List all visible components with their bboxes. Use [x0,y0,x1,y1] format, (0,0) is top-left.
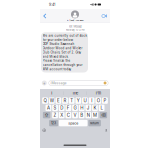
button[interactable]: N [85,112,91,118]
staticText: Q [44,98,47,103]
staticText: K [93,105,96,110]
button[interactable]: I [40,90,63,96]
button[interactable]: P [102,97,108,104]
staticText: V [73,112,76,118]
staticText: G [73,105,76,110]
staticText: ⌫ [101,113,106,117]
staticText: Z [53,112,56,118]
staticText: N [87,112,90,118]
staticText: space [68,121,78,125]
staticText: R [63,98,66,103]
staticText: +1 (555) 123-4567 [66,19,83,22]
button[interactable]: FaceTime [100,13,109,19]
button[interactable]: L [99,105,104,111]
staticText: W [50,98,54,103]
staticText: 123 [51,121,56,125]
staticText: D [60,105,63,110]
button[interactable]: Back [41,11,48,21]
staticText: Y [77,98,80,103]
staticText: iMessage [50,81,66,85]
button[interactable]: A [45,105,51,111]
staticText: E [57,98,60,103]
button[interactable]: X [59,112,65,118]
button[interactable]: T [69,97,75,104]
staticText: F [67,105,70,110]
button[interactable]: R [62,97,68,104]
button[interactable]: K [92,105,98,111]
button[interactable]: 123 [49,120,58,126]
staticText: + [43,80,46,86]
staticText: M [93,112,97,118]
staticText: The [72,91,78,96]
button[interactable]: F [65,105,71,111]
staticText: L [101,105,103,110]
button[interactable]: O [95,97,101,104]
button[interactable]: G [72,105,78,111]
button[interactable]: space [59,120,87,126]
staticText: O [97,98,100,103]
button[interactable]: D [59,105,65,111]
staticText: T [70,98,73,103]
button[interactable]: Add media [42,80,47,86]
button[interactable]: S [52,105,58,111]
staticText: Yesterday 10:12 PM [65,28,84,31]
button[interactable]: C [65,112,71,118]
button[interactable]: Switch keyboard [43,129,46,132]
button[interactable]: H [79,105,85,111]
button[interactable]: B [79,112,85,118]
staticText: S [54,105,57,110]
staticText: B [80,112,83,118]
staticText: 9:41 [49,2,55,7]
staticText: ⇧ [45,113,49,117]
staticText: X [60,112,63,118]
button[interactable]: U [82,97,88,104]
button[interactable]: Q [42,97,48,104]
button[interactable]: I [89,97,94,104]
staticText: C [67,112,70,118]
staticText: U [83,98,86,103]
button[interactable]: E [55,97,61,104]
button[interactable]: J [85,105,91,111]
staticText: I [51,91,52,96]
button[interactable]: I'm [87,90,110,96]
button[interactable]: V [72,112,78,118]
button[interactable]: M [92,112,98,118]
button[interactable]: Y [75,97,81,104]
button[interactable]: W [49,97,55,104]
button[interactable]: Z [52,112,58,118]
button[interactable]: return [88,120,101,126]
button[interactable]: The [63,90,87,96]
staticText: I'm [96,91,101,96]
staticText: A [47,105,50,110]
button[interactable]: ⇧ [43,112,50,118]
staticText: Text Message [68,25,81,28]
staticText: return [90,121,99,125]
button[interactable]: Dictate [105,129,107,132]
button[interactable]: ⌫ [100,112,107,118]
staticText: J [87,105,90,110]
button[interactable]: +1 (555) 123-4567 [66,10,83,22]
staticText: I [91,98,92,103]
staticText: P [103,98,106,103]
staticText: H [80,105,83,110]
staticText: We are currently out of stock for your o… [42,34,86,71]
